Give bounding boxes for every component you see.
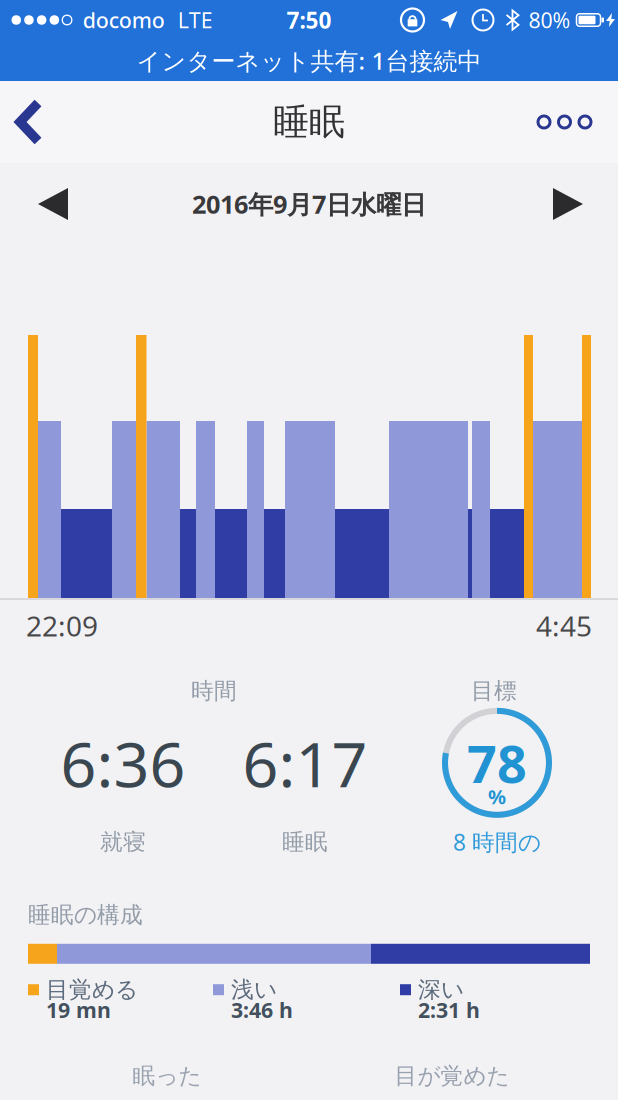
staticText: 睡眠の構成 [28, 901, 143, 929]
staticText: docomo [83, 6, 165, 34]
staticText: 2016年9月7日水曜日 [192, 187, 426, 221]
button[interactable]: Back [0, 99, 42, 145]
staticText: 80% [528, 6, 570, 34]
staticText: 78 [467, 728, 527, 797]
staticText: 時間 [191, 677, 237, 705]
staticText: 睡眠 [273, 100, 345, 144]
staticText: 8 時間の [453, 827, 541, 857]
staticText: 目が覚めた [394, 1062, 509, 1090]
staticText: 3:46 h [231, 996, 293, 1024]
button[interactable]: Previous day [0, 188, 68, 220]
staticText: 浅い [231, 976, 277, 1004]
button[interactable]: インターネット共有: 1台接続中 [0, 40, 618, 81]
staticText: 22:09 [26, 607, 98, 644]
staticText: 睡眠 [282, 828, 328, 856]
staticText: 2:31 h [418, 996, 480, 1024]
button[interactable]: More [538, 116, 618, 128]
staticText: 就寝 [100, 828, 146, 856]
staticText: 7:50 [286, 5, 331, 35]
staticText: インターネット共有: 1台接続中 [136, 45, 481, 76]
staticText: % [488, 783, 506, 810]
staticText: 6:17 [242, 721, 367, 804]
staticText: 目覚める [46, 976, 138, 1004]
staticText: 目標 [471, 677, 517, 705]
staticText: 4:45 [536, 607, 592, 644]
staticText: 19 mn [46, 996, 111, 1024]
staticText: 眠った [132, 1062, 201, 1090]
button[interactable]: Next day [553, 188, 618, 220]
staticText: 深い [418, 976, 464, 1004]
staticText: LTE [178, 6, 213, 34]
staticText: 6:36 [60, 721, 185, 804]
